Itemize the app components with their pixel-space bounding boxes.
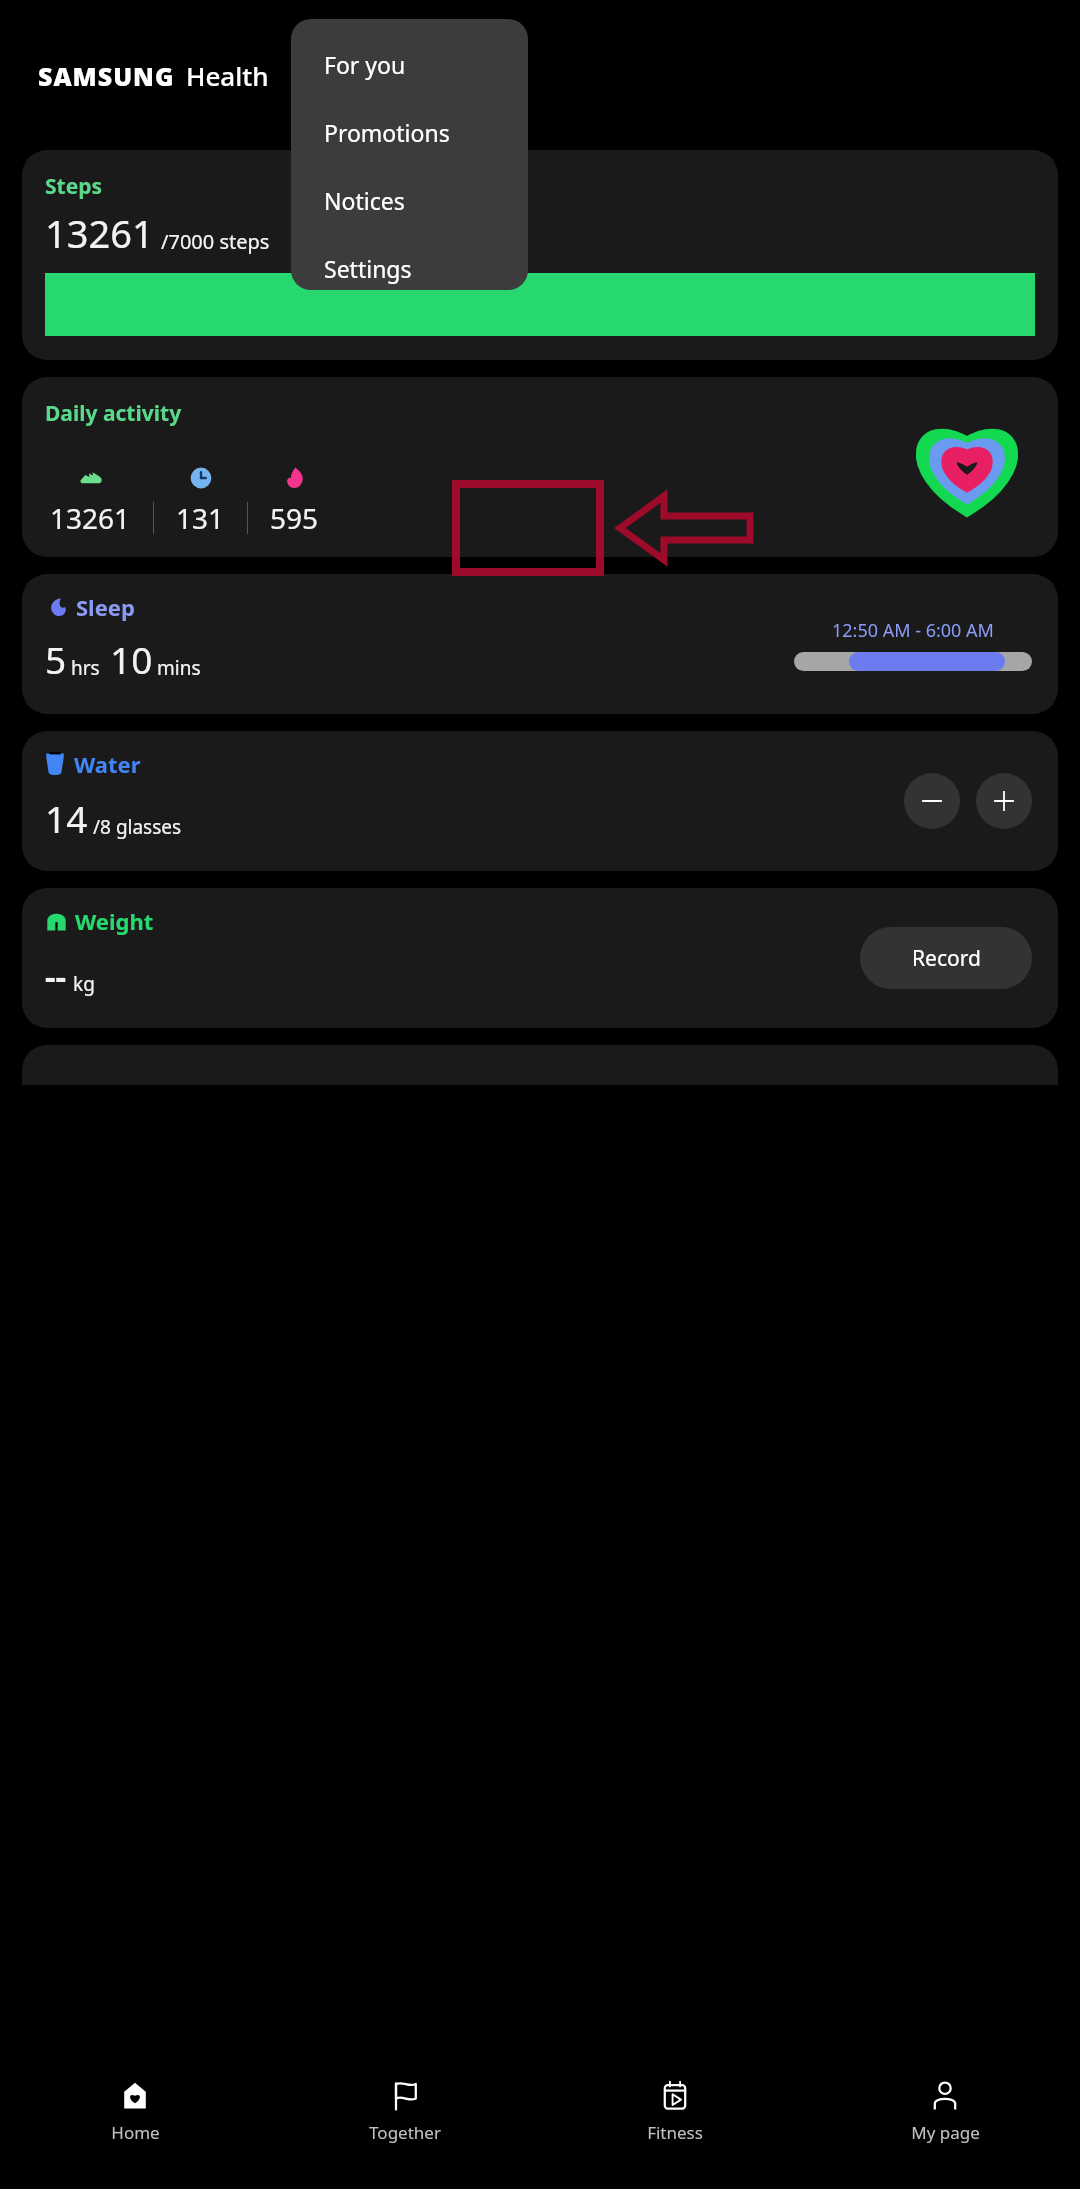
staticText: 10 <box>110 634 153 684</box>
staticText: My page <box>911 2121 980 2144</box>
staticText: /7000 steps <box>161 228 270 255</box>
staticText: Weight <box>75 906 154 936</box>
staticText: Settings <box>324 253 412 284</box>
staticText: 5 <box>45 634 67 684</box>
button[interactable]: For you <box>291 42 528 86</box>
staticText: mins <box>157 655 201 681</box>
staticText: For you <box>324 49 406 80</box>
button[interactable]: Sleep <box>22 574 1058 714</box>
staticText: -- <box>45 954 67 999</box>
button[interactable]: Steps <box>22 150 1058 360</box>
button[interactable]: Promotions <box>291 110 528 154</box>
staticText: /8 glasses <box>93 814 182 840</box>
button[interactable]: Record <box>860 927 1032 989</box>
staticText: 13261 <box>45 207 154 259</box>
button[interactable]: Weight <box>22 888 1058 1028</box>
staticText: Together <box>369 2121 441 2144</box>
button[interactable]: Decrease water <box>904 773 960 829</box>
staticText: Fitness <box>647 2121 703 2144</box>
staticText: Promotions <box>324 117 450 148</box>
staticText: 131 <box>176 499 225 537</box>
button[interactable]: My page <box>810 2059 1080 2189</box>
button[interactable]: Settings <box>291 246 528 290</box>
staticText: Record <box>912 944 981 973</box>
staticText: 595 <box>270 499 319 537</box>
staticText: 13261 <box>50 499 131 537</box>
staticText: Health <box>186 58 269 93</box>
staticText: Notices <box>324 185 405 216</box>
staticText: Water <box>74 749 141 779</box>
button[interactable]: Increase water <box>976 773 1032 829</box>
button[interactable]: Fitness <box>540 2059 810 2189</box>
staticText: 14 <box>45 793 88 843</box>
staticText: Home <box>111 2121 160 2144</box>
staticText: Sleep <box>76 592 135 622</box>
button[interactable]: Together <box>270 2059 540 2189</box>
button[interactable]: Notices <box>291 178 528 222</box>
staticText: Daily activity <box>45 399 182 428</box>
staticText: SAMSUNG <box>38 59 175 93</box>
button[interactable]: Home <box>0 2059 270 2189</box>
staticText: kg <box>73 971 95 997</box>
staticText: Steps <box>45 172 103 201</box>
staticText: hrs <box>71 655 100 681</box>
button[interactable]: Water <box>22 731 1058 871</box>
button[interactable]: Daily activity <box>22 377 1058 557</box>
staticText: 12:50 AM - 6:00 AM <box>832 618 994 643</box>
